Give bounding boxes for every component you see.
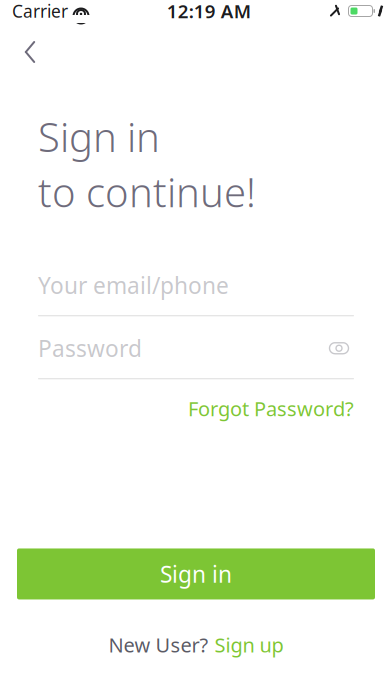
staticText: Password [38, 333, 142, 363]
staticText: New User? [108, 631, 208, 658]
staticText: Your email/phone [38, 270, 229, 300]
staticText: Sign up [214, 631, 283, 658]
button[interactable]: New User? [0, 623, 392, 666]
button[interactable]: Show password [324, 335, 354, 361]
staticText: Sign in [160, 559, 232, 589]
staticText: Forgot Password? [188, 395, 354, 422]
staticText: Carrier [12, 0, 68, 22]
staticText: 12:19 AM [167, 0, 251, 23]
button[interactable]: Back [8, 30, 52, 74]
button[interactable]: Sign in [17, 548, 375, 599]
staticText: Sign in [38, 110, 160, 163]
staticText: to continue! [38, 165, 256, 218]
button[interactable]: Forgot Password? [188, 391, 354, 426]
